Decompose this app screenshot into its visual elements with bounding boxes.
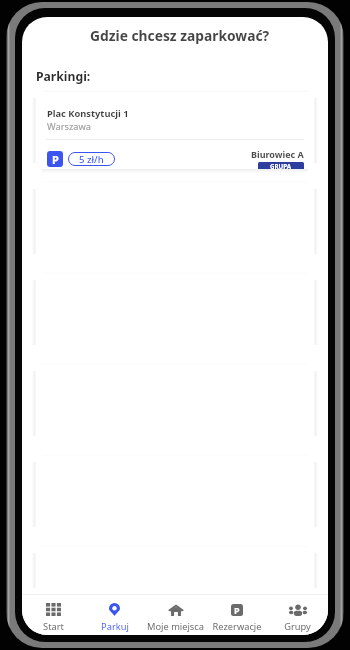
button[interactable]: Rezerwacje	[206, 595, 267, 635]
staticText: Gdzie chcesz zaparkować?	[90, 26, 270, 45]
other: Grupy	[289, 604, 307, 616]
staticText: Grupy	[284, 620, 311, 633]
staticText: Parkingi:	[36, 68, 91, 85]
other: Moje miejsca	[168, 604, 184, 616]
staticText: GRUPA	[270, 162, 292, 169]
staticText: Parkuj	[101, 620, 129, 633]
staticText: Plac Konstytucji 1	[47, 107, 129, 120]
staticText: Rezerwacje	[212, 620, 262, 633]
other: Start	[46, 603, 61, 616]
other: Parkuj	[109, 603, 120, 616]
staticText: Warszawa	[47, 120, 92, 133]
staticText: Biurowiec A	[251, 148, 304, 160]
staticText: 5 zł/h	[79, 153, 104, 166]
staticText: Moje miejsca	[147, 620, 204, 633]
staticText: P	[52, 152, 59, 167]
button[interactable]: Parkuj	[84, 595, 145, 635]
button[interactable]: Grupy	[267, 595, 328, 635]
other: Rezerwacje	[231, 604, 243, 616]
button[interactable]: Plac Konstytucji 1	[36, 92, 314, 169]
staticText: P	[234, 604, 240, 616]
button[interactable]: Moje miejsca	[145, 595, 206, 635]
button[interactable]: Start	[22, 595, 84, 635]
staticText: Start	[43, 620, 64, 633]
